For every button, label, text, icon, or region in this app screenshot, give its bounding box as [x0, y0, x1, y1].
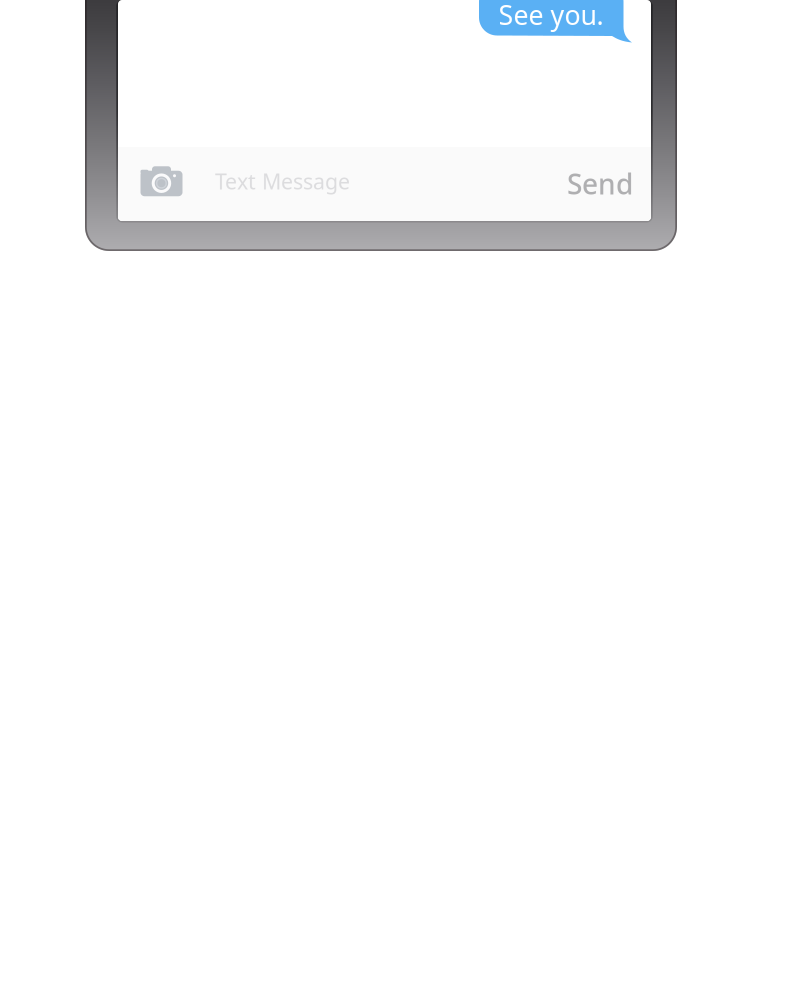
staticText: Text Message [215, 167, 350, 195]
staticText: See you. [498, 0, 603, 32]
button[interactable]: Take photo [129, 148, 193, 210]
staticText: Send [567, 165, 633, 202]
button[interactable]: Send [553, 141, 647, 226]
